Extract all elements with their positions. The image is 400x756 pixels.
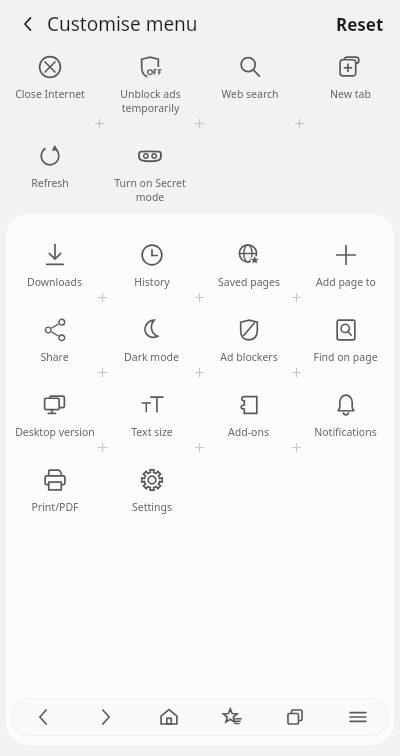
staticText: Add page to [316,275,376,289]
button[interactable]: Find on page [297,311,394,368]
staticText: Notifications [314,425,377,439]
staticText: Saved pages [218,275,280,289]
button[interactable]: Tabs [263,698,326,736]
button[interactable]: Saved pages [200,236,297,293]
button[interactable]: Forward [74,698,137,736]
button[interactable]: Desktop version [6,386,103,443]
button[interactable]: Add-ons [200,386,297,443]
button[interactable]: Downloads [6,236,103,293]
button[interactable]: Turn on Secret mode [100,137,200,208]
button[interactable]: New tab [300,48,400,105]
staticText: Dark mode [124,350,179,364]
staticText: Settings [132,500,172,514]
staticText: Print/PDF [31,500,79,514]
staticText: Find on page [313,350,378,364]
button[interactable]: History [103,236,200,293]
staticText: Unblock ads temporarily [120,87,181,115]
button[interactable]: Bookmarks [200,698,263,736]
staticText: Downloads [27,275,82,289]
staticText: New tab [330,87,371,101]
staticText: Refresh [31,176,69,190]
staticText: Desktop version [15,425,95,439]
button[interactable]: Print/PDF [6,461,103,518]
button[interactable]: Ad blockers [200,311,297,368]
button[interactable]: Menu [326,698,389,736]
button[interactable]: Back [10,6,46,42]
button[interactable]: Refresh [0,137,100,194]
staticText: History [134,275,170,289]
staticText: Add-ons [228,425,269,439]
staticText: Customise menu [47,11,198,37]
staticText: Text size [131,425,173,439]
button[interactable]: Text size [103,386,200,443]
button[interactable]: Web search [200,48,300,105]
button[interactable]: Home [137,698,200,736]
button[interactable]: Dark mode [103,311,200,368]
button[interactable]: Close Internet [0,48,100,105]
staticText: Web search [221,87,279,101]
staticText: Share [40,350,69,364]
button[interactable]: Settings [103,461,200,518]
button[interactable]: Back [11,698,74,736]
button[interactable]: Unblock ads temporarily [100,48,200,119]
staticText: Ad blockers [220,350,278,364]
button[interactable]: Reset [328,7,392,42]
staticText: Turn on Secret mode [114,176,186,204]
button[interactable]: Add page to [297,236,394,293]
button[interactable]: Share [6,311,103,368]
staticText: Close Internet [15,87,85,101]
button[interactable]: Notifications [297,386,394,443]
staticText: Reset [336,13,384,36]
